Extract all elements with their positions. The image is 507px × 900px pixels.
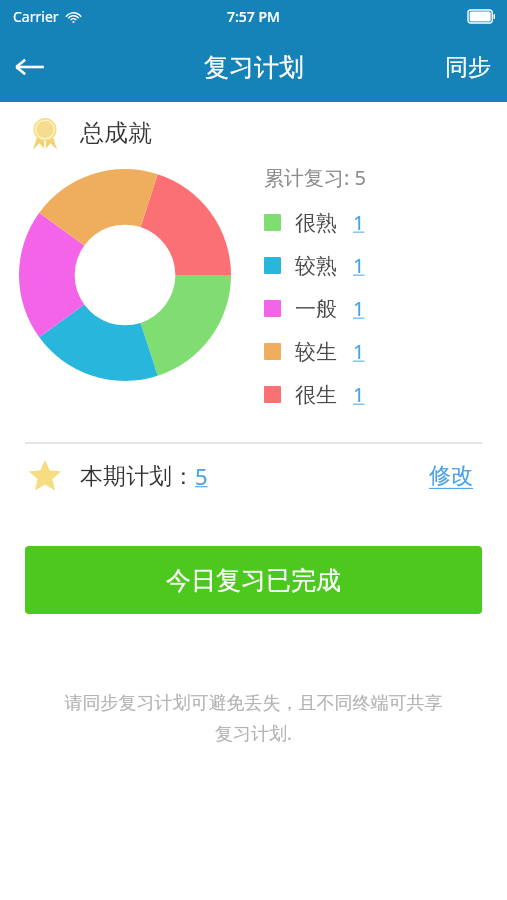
staticText: 本期计划： xyxy=(80,462,195,491)
staticText: 较熟 xyxy=(295,253,337,279)
button[interactable]: 5 xyxy=(195,461,208,491)
staticText: 一般 xyxy=(295,296,337,322)
staticText: 总成就 xyxy=(80,118,152,148)
staticText: 请同步复习计划可避免丢失，且不同终端可共享复习计划. xyxy=(58,692,449,745)
button[interactable]: 较熟 xyxy=(250,244,507,287)
button[interactable]: 一般 xyxy=(250,287,507,330)
staticText: 修改 xyxy=(429,462,473,490)
button[interactable]: 同步 xyxy=(429,41,507,94)
staticText: 1 xyxy=(353,252,365,279)
staticText: 5 xyxy=(195,461,208,491)
button[interactable]: 很熟 xyxy=(250,201,507,244)
button[interactable]: Back xyxy=(0,37,60,97)
staticText: 1 xyxy=(353,381,365,408)
staticText: 同步 xyxy=(445,53,491,82)
staticText: 很生 xyxy=(295,382,337,408)
staticText: 今日复习已完成 xyxy=(166,565,341,596)
staticText: 1 xyxy=(353,295,365,322)
staticText: 较生 xyxy=(295,339,337,365)
staticText: Carrier xyxy=(13,7,59,26)
staticText: 1 xyxy=(353,209,365,236)
button[interactable]: 今日复习已完成 xyxy=(25,546,482,614)
staticText: 复习计划 xyxy=(204,52,304,83)
button[interactable]: 很生 xyxy=(250,373,507,416)
staticText: 很熟 xyxy=(295,210,337,236)
staticText: 累计复习: 5 xyxy=(264,164,366,191)
button[interactable]: 修改 xyxy=(425,458,477,494)
staticText: 7:57 PM xyxy=(227,7,280,26)
staticText: 1 xyxy=(353,338,365,365)
button[interactable]: 较生 xyxy=(250,330,507,373)
